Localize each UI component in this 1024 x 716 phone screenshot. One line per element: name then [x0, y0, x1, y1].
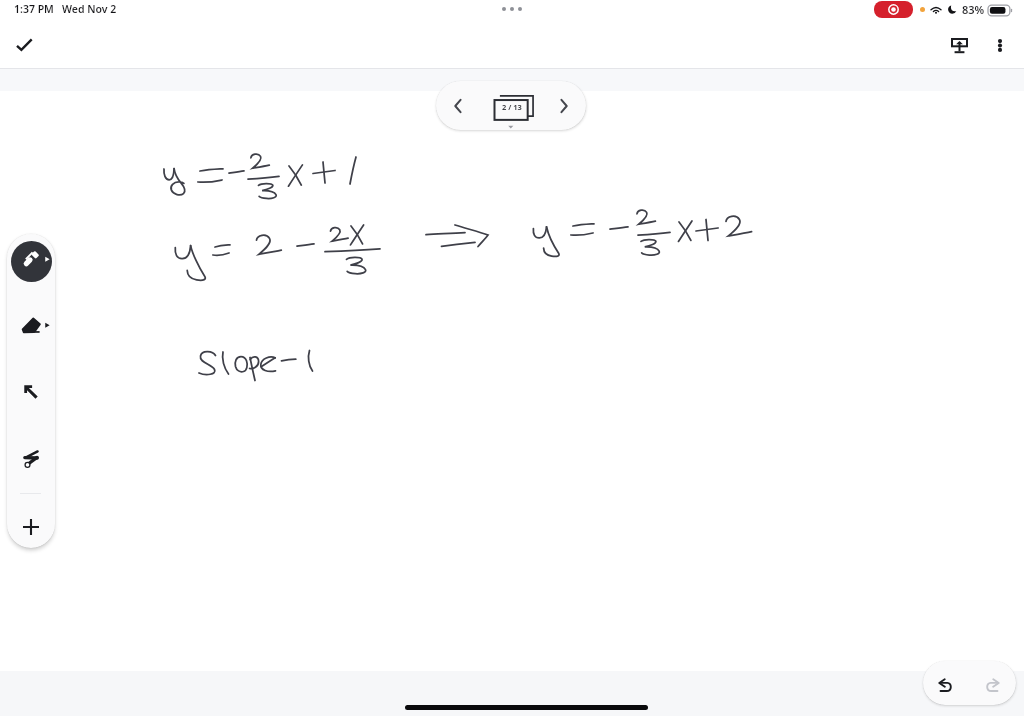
button[interactable]: Undo — [923, 663, 967, 705]
staticText: 2 / 13 — [502, 102, 522, 112]
button[interactable]: Pen tool — [7, 237, 55, 285]
staticText: Wed Nov 2 — [62, 2, 117, 16]
button[interactable]: Redo — [971, 663, 1015, 705]
button[interactable]: Add tool — [7, 503, 55, 548]
button[interactable]: Eraser tool — [7, 303, 55, 351]
button[interactable]: Previous page — [437, 85, 479, 127]
button[interactable]: Done — [4, 24, 44, 64]
button[interactable]: Laser pointer — [7, 434, 55, 482]
button[interactable]: Select tool — [7, 368, 55, 416]
button[interactable]: Page 2 of 13 — [494, 93, 536, 125]
button[interactable]: Next page — [543, 85, 585, 127]
button[interactable]: Present to screen — [939, 25, 979, 65]
staticText: 1:37 PM — [14, 2, 54, 16]
staticText: 83% — [962, 2, 985, 17]
button[interactable]: More options — [980, 25, 1020, 65]
